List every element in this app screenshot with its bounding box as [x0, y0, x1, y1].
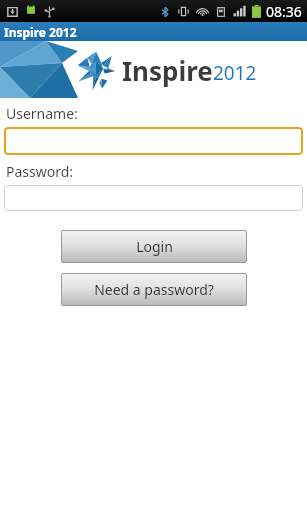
staticText: Inspire 2012	[4, 24, 77, 40]
staticText: Username:	[6, 104, 78, 123]
button[interactable]: Password field	[4, 185, 303, 211]
staticText: Inspire	[122, 53, 213, 88]
staticText: 2012	[213, 60, 257, 86]
button[interactable]: Need a password?	[61, 273, 247, 306]
button[interactable]: Username field	[4, 127, 303, 155]
staticText: Login	[136, 237, 173, 256]
staticText: Password:	[6, 162, 74, 181]
button[interactable]: Login	[61, 230, 247, 263]
staticText: 08:36	[266, 2, 302, 21]
staticText: Need a password?	[94, 280, 214, 299]
